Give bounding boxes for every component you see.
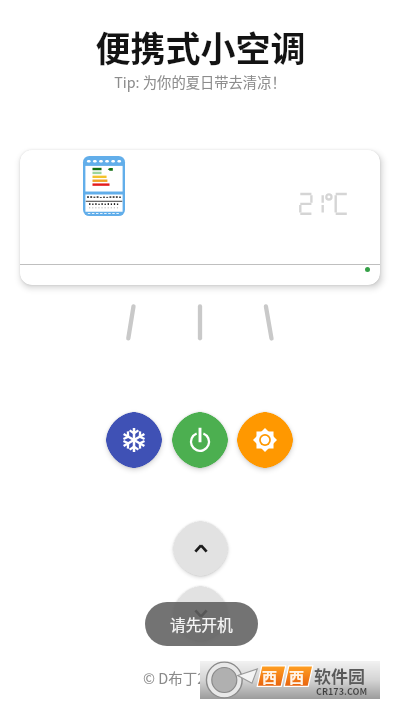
staticText: CR173.COM	[316, 685, 368, 698]
staticText: 便携式小空调	[95, 21, 306, 72]
button[interactable]: Air conditioner unit	[20, 150, 380, 285]
staticText: Tip: 为你的夏日带去清凉！	[114, 71, 286, 92]
staticText: © D布丁2018/1/1	[143, 667, 257, 688]
button[interactable]: Cooling mode	[106, 412, 162, 468]
button[interactable]: Brightness	[237, 412, 293, 468]
staticText: 西	[289, 666, 305, 688]
button[interactable]: Power	[172, 412, 228, 468]
staticText: 西	[262, 666, 278, 688]
button[interactable]: Decrease temperature	[173, 586, 228, 641]
staticText: 请先开机	[170, 613, 233, 636]
staticText: 软件园	[314, 663, 365, 688]
button[interactable]: Increase temperature	[173, 521, 228, 576]
button[interactable]: 请先开机	[145, 602, 258, 646]
